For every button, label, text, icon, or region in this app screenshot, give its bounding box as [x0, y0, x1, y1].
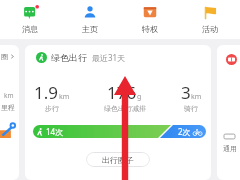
button[interactable]: 主页 — [60, 0, 120, 39]
button[interactable]: 出行圈子 — [86, 152, 150, 167]
staticText: 通用 — [223, 144, 237, 153]
button[interactable]: 活动 — [180, 0, 240, 39]
button[interactable]: 绿色出行 — [25, 45, 211, 180]
staticText: 14次 — [46, 126, 64, 137]
staticText: 步行 — [45, 104, 59, 113]
staticText: 消息 — [22, 24, 38, 34]
staticText: 最近31天 — [92, 52, 126, 63]
button[interactable]: Next card — [217, 45, 240, 180]
staticText: g — [137, 92, 142, 102]
staticText: 里程 — [1, 103, 15, 112]
staticText: 绿色出行减排 — [104, 104, 146, 113]
staticText: 2次 — [178, 126, 191, 137]
staticText: 主页 — [82, 24, 98, 34]
button[interactable]: 特权 — [120, 0, 180, 39]
staticText: 圈 — [1, 52, 8, 61]
staticText: 3 — [181, 81, 191, 104]
staticText: 特权 — [142, 24, 158, 34]
button[interactable]: Previous card — [0, 45, 19, 180]
staticText: km — [59, 92, 70, 102]
staticText: 活动 — [202, 24, 218, 34]
staticText: km — [191, 92, 202, 102]
staticText: 176 — [107, 81, 137, 104]
staticText: km — [4, 91, 14, 100]
staticText: 出行圈子 — [102, 155, 134, 165]
staticText: 绿色出行 — [51, 52, 87, 63]
button[interactable]: 消息 — [0, 0, 60, 39]
staticText: 1.9 — [34, 81, 59, 104]
staticText: 骑行 — [184, 104, 198, 113]
